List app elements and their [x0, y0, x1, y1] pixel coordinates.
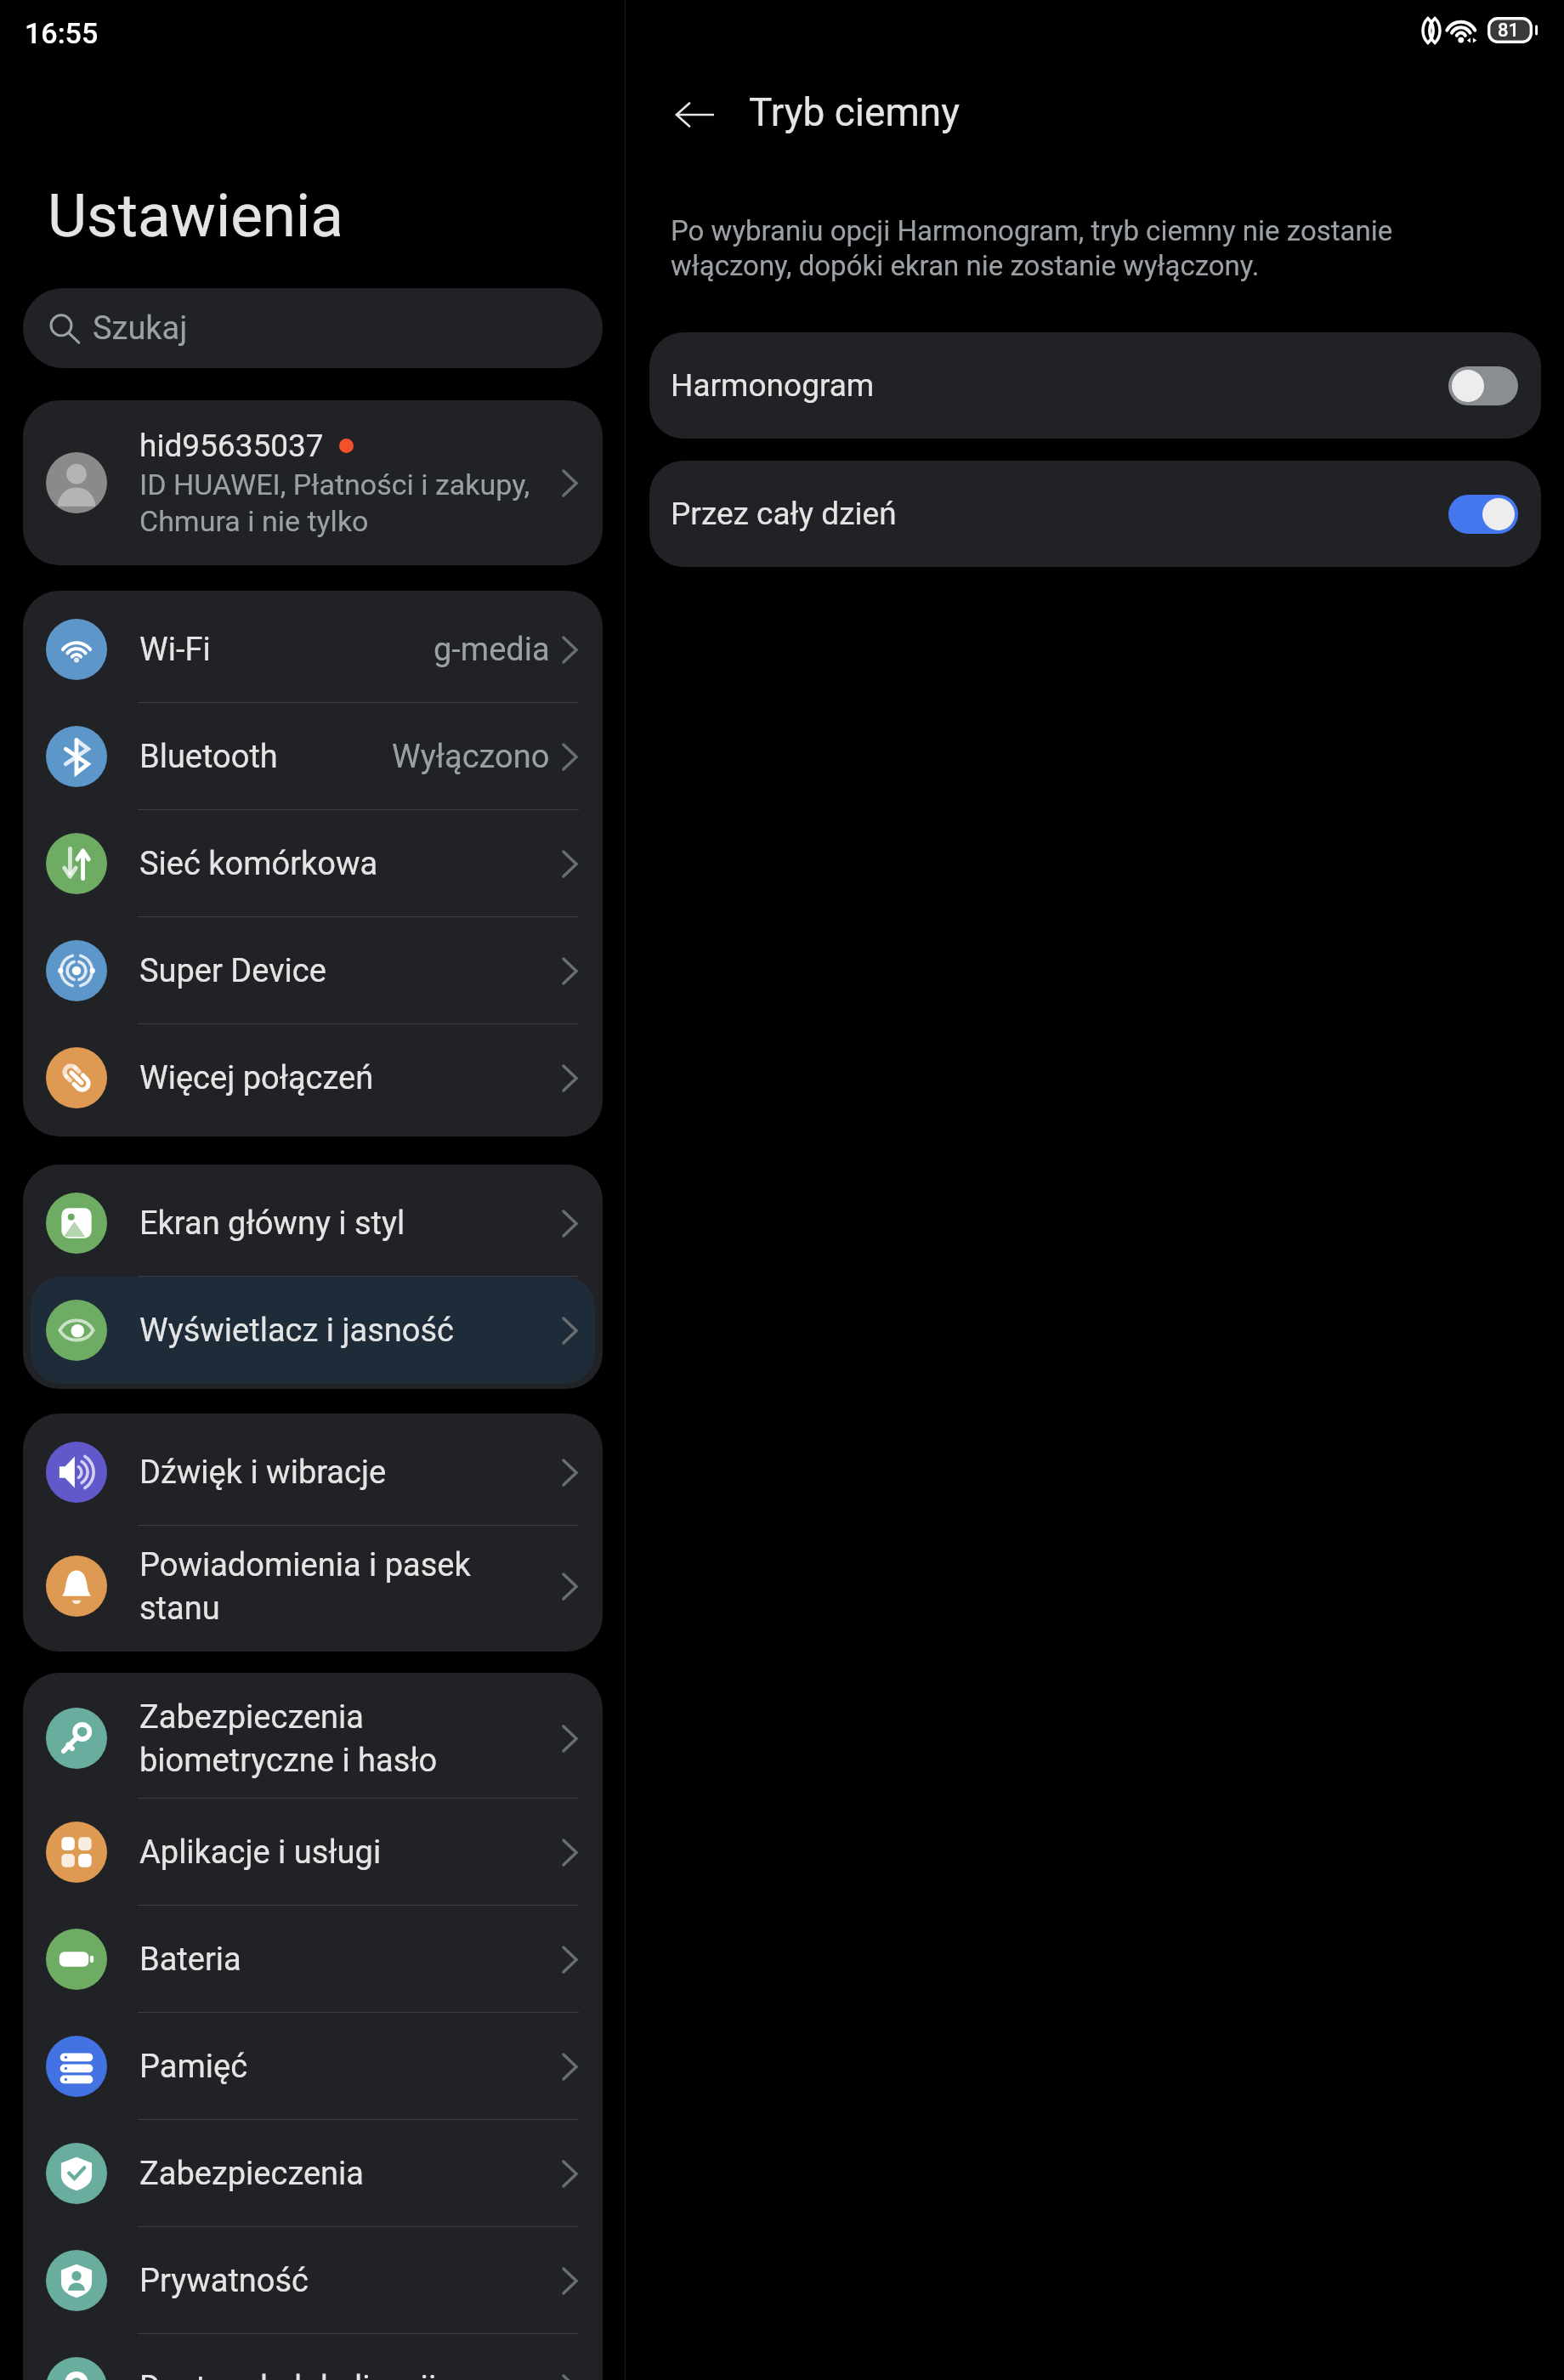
- button[interactable]: Prywatność: [23, 2227, 603, 2334]
- staticText: Zabezpieczenia: [139, 2155, 364, 2193]
- button[interactable]: Wi-Fi: [23, 596, 603, 703]
- staticText: Wyświetlacz i jasność: [139, 1312, 454, 1350]
- button[interactable]: Bateria: [23, 1906, 603, 2013]
- button[interactable]: Harmonogram, off: [1448, 366, 1518, 405]
- button[interactable]: Ekran główny i styl: [23, 1170, 603, 1277]
- button[interactable]: Aplikacje i usługi: [23, 1799, 603, 1906]
- button[interactable]: Sieć komórkowa: [23, 810, 603, 917]
- button[interactable]: Super Device: [23, 917, 603, 1024]
- button[interactable]: Dźwięk i wibracje: [23, 1419, 603, 1526]
- staticText: Zabezpieczenia biometryczne i hasło: [139, 1698, 438, 1779]
- button[interactable]: Dostęp do lokalizacji: [23, 2334, 603, 2380]
- button[interactable]: Szukaj: [23, 288, 603, 368]
- staticText: Po wybraniu opcji Harmonogram, tryb ciem…: [671, 214, 1393, 282]
- staticText: Przez cały dzień: [671, 496, 897, 532]
- button[interactable]: Zabezpieczenia biometryczne i hasło: [23, 1678, 603, 1799]
- staticText: Harmonogram: [671, 367, 875, 404]
- staticText: g-media: [433, 631, 550, 669]
- button[interactable]: Zabezpieczenia: [23, 2120, 603, 2227]
- staticText: Więcej połączeń: [139, 1059, 374, 1097]
- staticText: Dźwięk i wibracje: [139, 1453, 387, 1492]
- staticText: Powiadomienia i pasek stanu: [139, 1546, 471, 1627]
- staticText: Prywatność: [139, 2262, 309, 2300]
- staticText: Wi-Fi: [139, 631, 211, 669]
- staticText: 16:55: [25, 16, 99, 50]
- button[interactable]: Bluetooth: [23, 703, 603, 810]
- staticText: Bateria: [139, 1941, 241, 1979]
- staticText: hid95635037: [139, 428, 324, 464]
- button[interactable]: Przez cały dzień: [649, 461, 1541, 567]
- button[interactable]: hid95635037: [23, 400, 603, 565]
- button[interactable]: Powiadomienia i pasek stanu: [23, 1526, 603, 1646]
- staticText: Wyłączono: [392, 738, 550, 776]
- staticText: Ustawienia: [48, 180, 343, 251]
- staticText: Ekran główny i styl: [139, 1204, 405, 1243]
- button[interactable]: Przez cały dzień, on: [1448, 495, 1518, 534]
- button[interactable]: Harmonogram: [649, 332, 1541, 439]
- staticText: Sieć komórkowa: [139, 845, 378, 883]
- button[interactable]: Wyświetlacz i jasność: [23, 1277, 603, 1384]
- staticText: Szukaj: [93, 309, 188, 348]
- button[interactable]: Pamięć: [23, 2013, 603, 2120]
- staticText: Tryb ciemny: [749, 89, 960, 135]
- button[interactable]: Back: [660, 81, 728, 149]
- staticText: Super Device: [139, 952, 326, 990]
- staticText: Pamięć: [139, 2048, 248, 2086]
- staticText: ID HUAWEI, Płatności i zakupy, Chmura i …: [139, 467, 530, 538]
- staticText: 81: [1498, 20, 1520, 42]
- staticText: Aplikacje i usługi: [139, 1833, 382, 1872]
- staticText: Dostęp do lokalizacji: [139, 2369, 437, 2380]
- staticText: Bluetooth: [139, 738, 278, 776]
- button[interactable]: Więcej połączeń: [23, 1024, 603, 1131]
